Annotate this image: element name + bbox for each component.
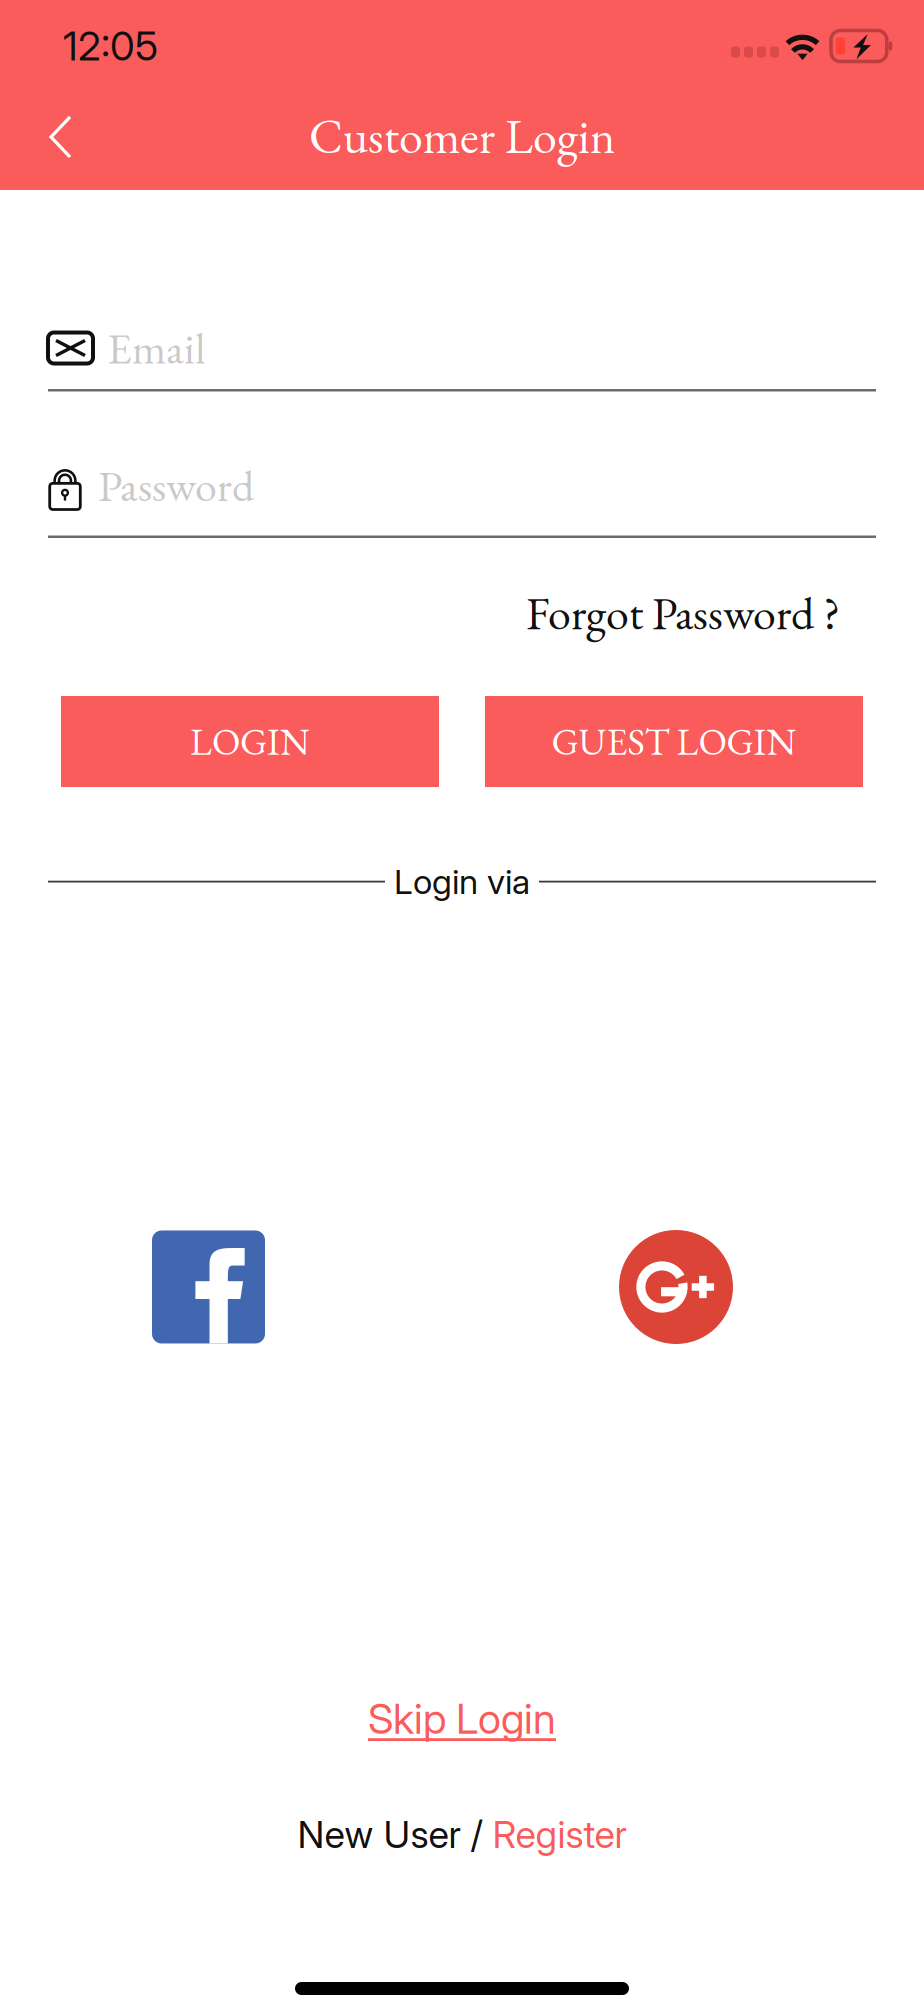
- staticText: Skip Login: [368, 1694, 556, 1744]
- button[interactable]: Back: [0, 97, 102, 185]
- button[interactable]: LOGIN: [61, 696, 439, 787]
- button[interactable]: Forgot Password ?: [526, 573, 876, 653]
- staticText: GUEST LOGIN: [551, 717, 796, 766]
- staticText: New User /: [297, 1812, 492, 1857]
- staticText: LOGIN: [190, 717, 310, 766]
- button[interactable]: GUEST LOGIN: [485, 696, 863, 787]
- button[interactable]: New User /: [297, 1806, 626, 1863]
- staticText: Forgot Password ?: [526, 583, 840, 643]
- button[interactable]: Skip Login: [368, 1686, 556, 1752]
- button[interactable]: Log in with Google Plus: [619, 1230, 733, 1344]
- staticText: 12:05: [63, 22, 158, 70]
- staticText: Email: [107, 319, 206, 377]
- staticText: Customer Login: [309, 105, 615, 167]
- staticText: Password: [98, 457, 254, 514]
- staticText: Register: [492, 1812, 626, 1857]
- staticText: Login via: [394, 861, 530, 902]
- button[interactable]: Log in with Facebook: [152, 1230, 265, 1343]
